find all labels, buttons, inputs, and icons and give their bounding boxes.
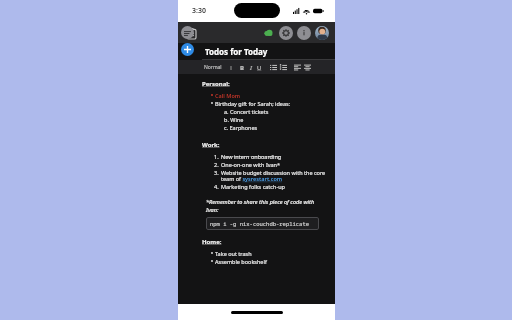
staticText: New intern onboarding bbox=[221, 153, 282, 160]
staticText: 3:30 bbox=[192, 6, 206, 16]
button[interactable]: I bbox=[246, 63, 255, 72]
button[interactable]: More options bbox=[297, 26, 311, 40]
button[interactable]: Notes list bbox=[184, 26, 198, 40]
button[interactable]: Add bbox=[181, 43, 194, 56]
staticText: c. Earphones bbox=[224, 124, 258, 131]
button[interactable]: Align left bbox=[292, 62, 302, 72]
staticText: 3. bbox=[214, 169, 219, 176]
staticText: Marketing folks catch-up bbox=[221, 183, 285, 190]
staticText: a. Concert tickets bbox=[224, 108, 269, 115]
button[interactable]: Outline bbox=[181, 26, 194, 39]
staticText: 1. bbox=[214, 153, 219, 160]
staticText: Normal bbox=[204, 64, 222, 71]
button[interactable]: Bulleted list bbox=[278, 62, 288, 72]
button[interactable]: B bbox=[237, 63, 246, 72]
button[interactable]: Normal bbox=[202, 64, 224, 71]
staticText: One-on-one with Ivan* bbox=[221, 161, 281, 168]
button[interactable]: Settings bbox=[279, 26, 293, 40]
button[interactable]: Personal: bbox=[202, 80, 230, 88]
staticText: B bbox=[240, 64, 244, 72]
staticText: Todos for Today bbox=[205, 46, 268, 57]
button[interactable]: Home: bbox=[202, 238, 222, 246]
staticText: Website budget discussion with the core … bbox=[221, 169, 327, 183]
staticText: Call Mom bbox=[215, 92, 241, 99]
staticText: Assemble bookshelf bbox=[215, 258, 267, 265]
button[interactable]: Work: bbox=[202, 141, 220, 149]
button[interactable]: Numbered list bbox=[268, 62, 278, 72]
button[interactable]: Align center bbox=[302, 62, 312, 72]
staticText: *Remember to share this piece of code wi… bbox=[206, 198, 327, 214]
button[interactable]: Account bbox=[315, 26, 329, 40]
button[interactable]: Text size bbox=[228, 65, 233, 70]
button[interactable]: U bbox=[255, 63, 264, 72]
button[interactable]: Synced bbox=[262, 26, 275, 39]
staticText: 2. bbox=[214, 161, 219, 168]
staticText: b. Wine bbox=[224, 116, 244, 123]
staticText: npm i -g nix-couchdb-replicate bbox=[210, 220, 310, 227]
staticText: 4. bbox=[214, 183, 219, 190]
staticText: Birthday gift for Sarah; ideas: bbox=[215, 100, 291, 107]
staticText: I bbox=[250, 64, 252, 72]
staticText: Take out trash bbox=[215, 250, 252, 257]
staticText: U bbox=[257, 64, 262, 72]
